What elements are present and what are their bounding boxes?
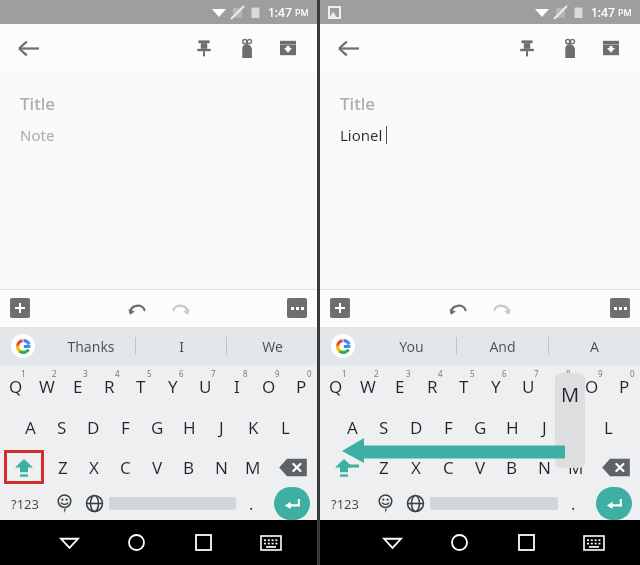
button[interactable]: F: [432, 407, 464, 447]
button[interactable]: C: [109, 447, 141, 487]
button[interactable]: Pin: [183, 27, 225, 69]
button[interactable]: O: [253, 365, 285, 407]
button[interactable]: G: [141, 407, 173, 447]
button[interactable]: And: [457, 327, 548, 365]
button[interactable]: R: [416, 365, 448, 407]
button[interactable]: K: [237, 407, 269, 447]
button[interactable]: K: [560, 407, 592, 447]
button[interactable]: B: [173, 447, 205, 487]
button[interactable]: S: [46, 407, 77, 447]
button[interactable]: Language: [400, 487, 430, 520]
button[interactable]: Emoji: [370, 487, 400, 520]
button[interactable]: Q: [0, 365, 31, 407]
button[interactable]: Recents: [170, 520, 237, 565]
button[interactable]: Reminder: [548, 27, 590, 69]
button[interactable]: Back: [358, 520, 426, 565]
button[interactable]: H: [496, 407, 528, 447]
button[interactable]: W: [352, 365, 384, 407]
button[interactable]: Undo: [120, 291, 154, 325]
button[interactable]: I: [221, 365, 253, 407]
button[interactable]: Back: [328, 28, 368, 68]
button[interactable]: ?123: [320, 487, 370, 520]
button[interactable]: M: [560, 447, 592, 487]
button[interactable]: U: [189, 365, 221, 407]
button[interactable]: ?123: [0, 487, 49, 520]
button[interactable]: A: [336, 407, 368, 447]
button[interactable]: D: [77, 407, 109, 447]
button[interactable]: Language: [79, 487, 109, 520]
button[interactable]: S: [368, 407, 400, 447]
button[interactable]: J: [528, 407, 560, 447]
button[interactable]: N: [205, 447, 237, 487]
button[interactable]: X: [78, 447, 109, 487]
button[interactable]: Undo: [441, 291, 475, 325]
button[interactable]: Google: [320, 327, 366, 365]
button[interactable]: Archive: [590, 27, 632, 69]
button[interactable]: E: [62, 365, 93, 407]
button[interactable]: T: [448, 365, 480, 407]
button[interactable]: More options: [287, 298, 307, 318]
button[interactable]: Add: [10, 298, 30, 318]
button[interactable]: N: [528, 447, 560, 487]
button[interactable]: I: [544, 365, 576, 407]
button[interactable]: Google: [0, 327, 46, 365]
button[interactable]: B: [496, 447, 528, 487]
button[interactable]: Home: [103, 520, 170, 565]
button[interactable]: A: [549, 327, 640, 365]
button[interactable]: Enter: [588, 487, 640, 520]
button[interactable]: Keyboard: [237, 520, 304, 565]
button[interactable]: E: [384, 365, 416, 407]
button[interactable]: Home: [426, 520, 493, 565]
button[interactable]: Keyboard: [560, 520, 627, 565]
button[interactable]: L: [592, 407, 624, 447]
button[interactable]: X: [400, 447, 432, 487]
button[interactable]: Backspace: [269, 447, 317, 487]
button[interactable]: Emoji: [49, 487, 79, 520]
button[interactable]: Back: [8, 28, 48, 68]
button[interactable]: C: [432, 447, 464, 487]
button[interactable]: Y: [480, 365, 512, 407]
button[interactable]: More options: [610, 298, 630, 318]
button[interactable]: Redo: [164, 291, 198, 325]
button[interactable]: Pin: [506, 27, 548, 69]
button[interactable]: Archive: [267, 27, 309, 69]
button[interactable]: L: [269, 407, 301, 447]
button[interactable]: You: [366, 327, 456, 365]
button[interactable]: H: [173, 407, 205, 447]
button[interactable]: J: [205, 407, 237, 447]
button[interactable]: Reminder: [225, 27, 267, 69]
button[interactable]: G: [464, 407, 496, 447]
button[interactable]: T: [125, 365, 157, 407]
button[interactable]: .: [236, 487, 266, 520]
button[interactable]: V: [464, 447, 496, 487]
button[interactable]: Redo: [485, 291, 519, 325]
button[interactable]: Enter: [266, 487, 317, 520]
button[interactable]: Back: [36, 520, 103, 565]
button[interactable]: I: [136, 327, 226, 365]
button[interactable]: U: [512, 365, 544, 407]
button[interactable]: Q: [320, 365, 352, 407]
button[interactable]: Thanks: [46, 327, 135, 365]
button[interactable]: .: [558, 487, 588, 520]
button[interactable]: O: [576, 365, 608, 407]
button[interactable]: V: [141, 447, 173, 487]
button[interactable]: Add: [330, 298, 350, 318]
button[interactable]: R: [93, 365, 125, 407]
button[interactable]: P: [608, 365, 640, 407]
button[interactable]: Z: [47, 447, 78, 487]
button[interactable]: Y: [157, 365, 189, 407]
button[interactable]: P: [285, 365, 317, 407]
button[interactable]: Z: [368, 447, 400, 487]
button[interactable]: Shift: [0, 447, 47, 487]
button[interactable]: Backspace: [592, 447, 640, 487]
button[interactable]: W: [31, 365, 62, 407]
button[interactable]: F: [109, 407, 141, 447]
button[interactable]: A: [15, 407, 46, 447]
button[interactable]: Shift: [320, 447, 368, 487]
button[interactable]: D: [400, 407, 432, 447]
button[interactable]: We: [227, 327, 317, 365]
button[interactable]: Recents: [493, 520, 560, 565]
button[interactable]: M: [237, 447, 269, 487]
